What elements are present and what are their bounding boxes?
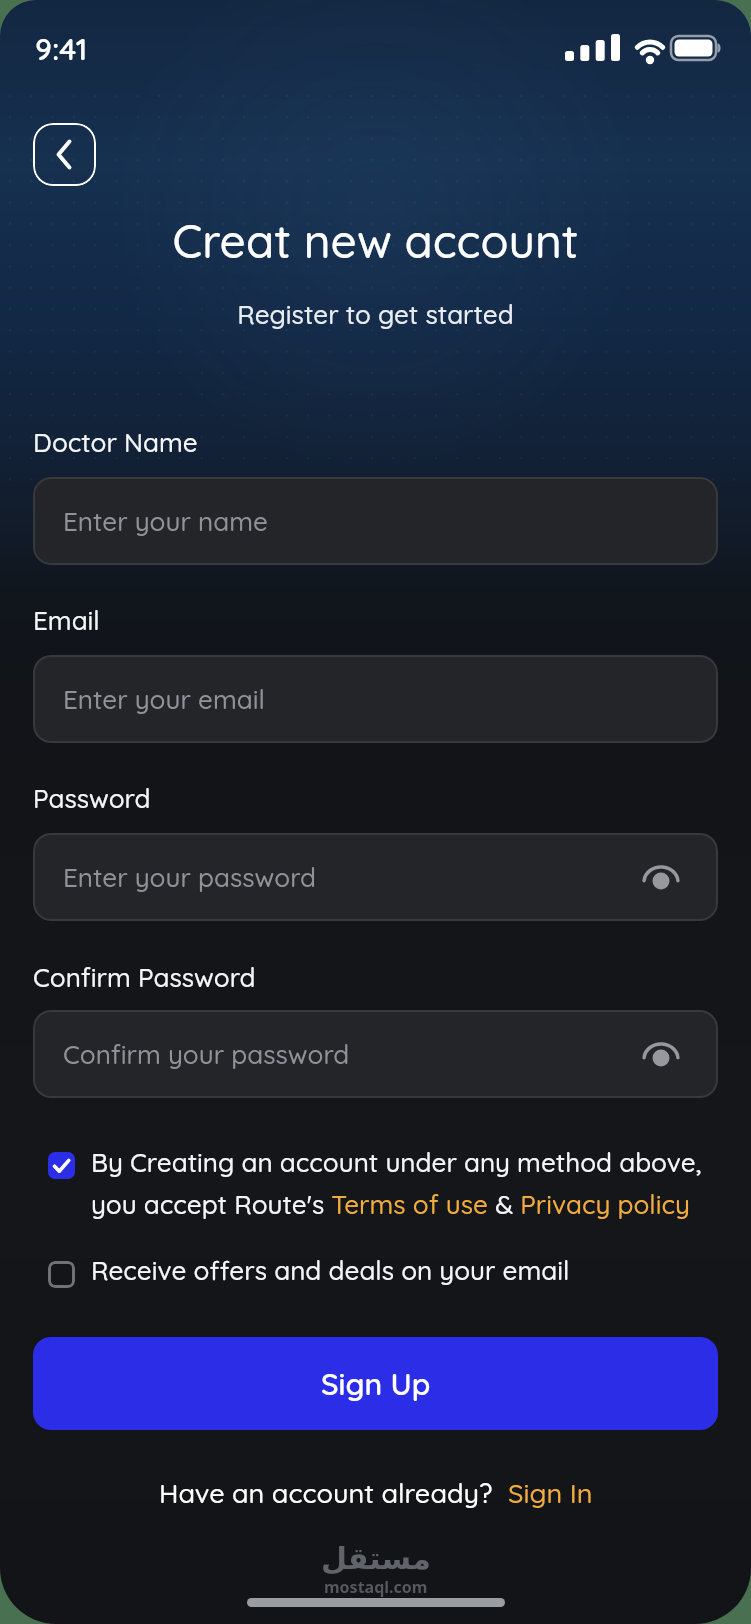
- button[interactable]: Enter your email: [33, 655, 718, 743]
- staticText: Enter your password: [63, 861, 316, 894]
- button[interactable]: Receive offers and deals on your email: [48, 1254, 570, 1288]
- button[interactable]: Confirm your password: [33, 1010, 718, 1098]
- button[interactable]: [635, 1028, 687, 1080]
- button[interactable]: [33, 123, 96, 186]
- staticText: Register to get started: [0, 298, 751, 331]
- button[interactable]: Sign Up: [33, 1337, 718, 1430]
- staticText: Password: [33, 782, 151, 815]
- staticText: 9:41: [35, 30, 88, 66]
- staticText: Confirm your password: [63, 1038, 350, 1071]
- staticText: Enter your email: [63, 683, 265, 716]
- button[interactable]: By Creating an account under any method …: [48, 1146, 702, 1220]
- button[interactable]: Enter your name: [33, 477, 718, 565]
- staticText: Doctor Name: [33, 426, 198, 459]
- staticText: Enter your name: [63, 505, 268, 538]
- staticText: By Creating an account under any method …: [91, 1146, 702, 1220]
- button[interactable]: Sign In: [508, 1476, 593, 1510]
- staticText: Email: [33, 604, 100, 637]
- button[interactable]: [635, 851, 687, 903]
- button[interactable]: Enter your password: [33, 833, 718, 921]
- staticText: Have an account already?: [159, 1476, 508, 1510]
- staticText: Sign In: [508, 1476, 593, 1510]
- staticText: Sign Up: [321, 1365, 431, 1403]
- staticText: Receive offers and deals on your email: [91, 1254, 570, 1287]
- staticText: mostaql.com: [324, 1576, 428, 1598]
- staticText: Confirm Password: [33, 961, 256, 994]
- staticText: مستقل: [321, 1541, 431, 1576]
- staticText: Creat new account: [0, 212, 751, 270]
